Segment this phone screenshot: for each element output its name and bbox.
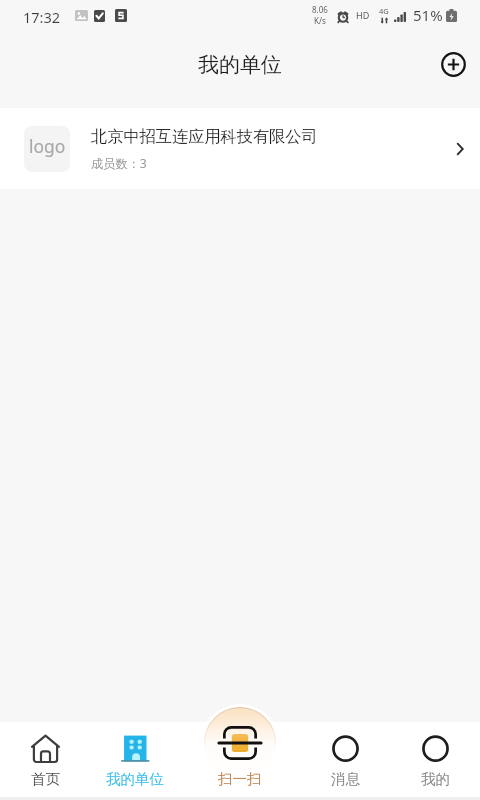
button[interactable]: 我的 bbox=[390, 722, 480, 797]
staticText: 我的 bbox=[421, 770, 450, 788]
staticText: logo bbox=[29, 134, 66, 158]
staticText: 扫一扫 bbox=[218, 770, 262, 788]
button[interactable]: 消息 bbox=[300, 722, 390, 797]
staticText: 北京中招互连应用科技有限公司 bbox=[91, 126, 318, 146]
staticText: 17:32 bbox=[23, 7, 61, 27]
staticText: HD bbox=[356, 9, 370, 21]
other: Open bbox=[448, 137, 472, 161]
staticText: 8.06 bbox=[312, 4, 328, 15]
staticText: 首页 bbox=[31, 770, 60, 788]
staticText: 我的单位 bbox=[198, 52, 282, 78]
staticText: K/s bbox=[314, 15, 326, 26]
button[interactable]: 扫一扫 bbox=[180, 722, 300, 797]
staticText: 4G bbox=[379, 6, 389, 16]
staticText: 51% bbox=[413, 5, 443, 25]
staticText: 我的单位 bbox=[106, 770, 164, 788]
button[interactable]: logo bbox=[0, 108, 480, 189]
staticText: 消息 bbox=[331, 770, 360, 788]
staticText: 成员数：3 bbox=[91, 155, 147, 172]
button[interactable]: Add unit bbox=[433, 44, 473, 84]
button[interactable]: 我的单位 bbox=[90, 722, 180, 797]
button[interactable]: 首页 bbox=[0, 722, 90, 797]
